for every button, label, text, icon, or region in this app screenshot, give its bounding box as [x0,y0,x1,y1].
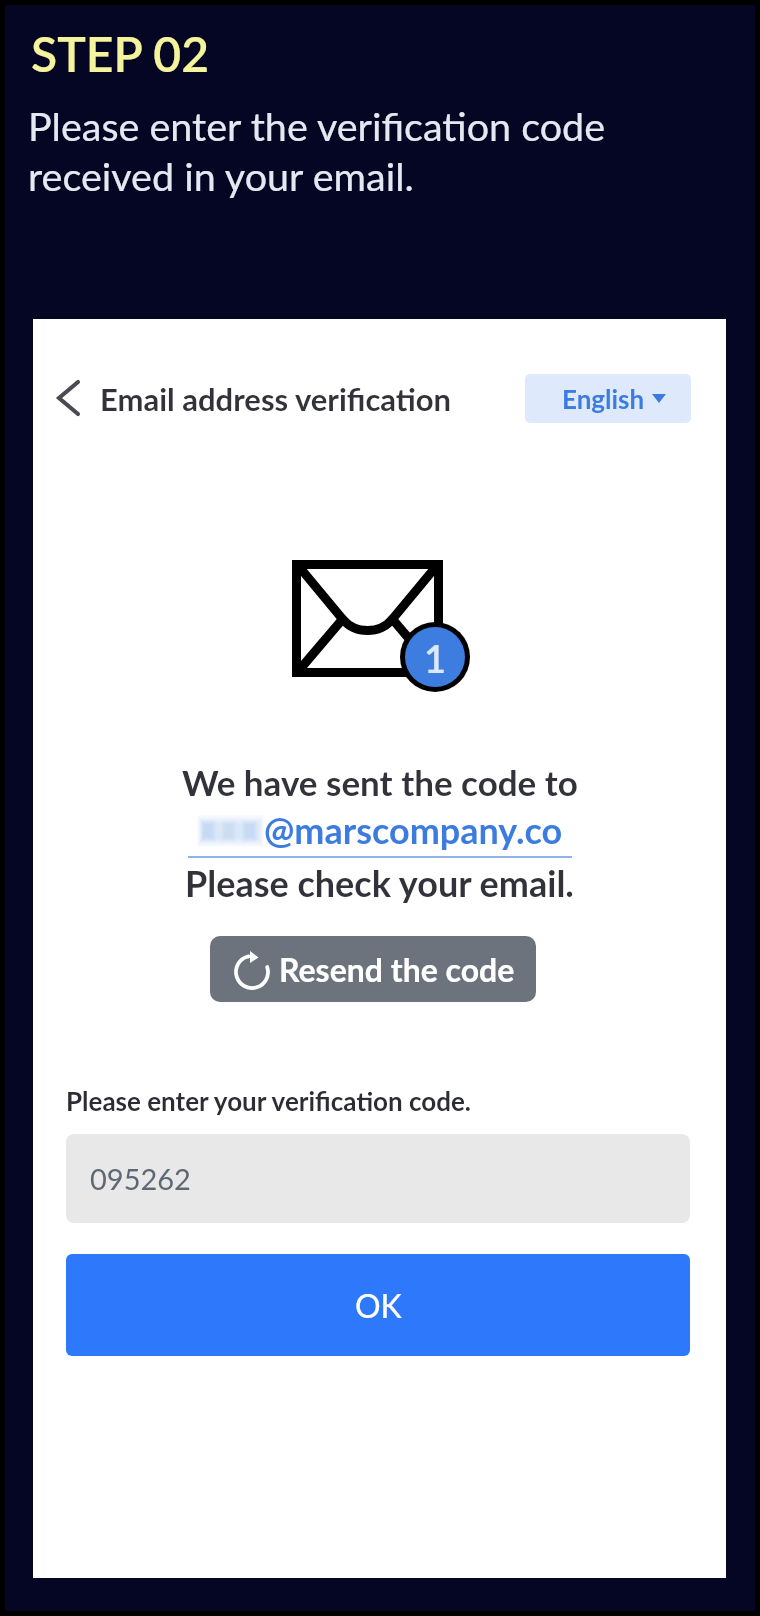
button[interactable]: Back [38,368,98,428]
button[interactable]: Resend the code [210,936,536,1002]
staticText: Please check your email. [185,861,574,904]
staticText: 1 [419,635,451,681]
staticText: We have sent the code to [182,761,578,803]
button[interactable]: OK [66,1254,690,1356]
button[interactable]: English [525,374,691,423]
staticText: 095262 [90,1161,191,1196]
staticText: Please enter your verification code. [66,1085,471,1116]
staticText: @marscompany.co [264,808,563,851]
staticText: Email address verification [100,380,452,417]
staticText: English [562,383,645,414]
staticText: Resend the code [279,950,515,988]
staticText: OK [355,1286,402,1324]
button[interactable]: 095262 [66,1134,690,1223]
staticText: STEP 02 [31,25,210,83]
staticText: Please enter the verification code recei… [28,102,606,200]
